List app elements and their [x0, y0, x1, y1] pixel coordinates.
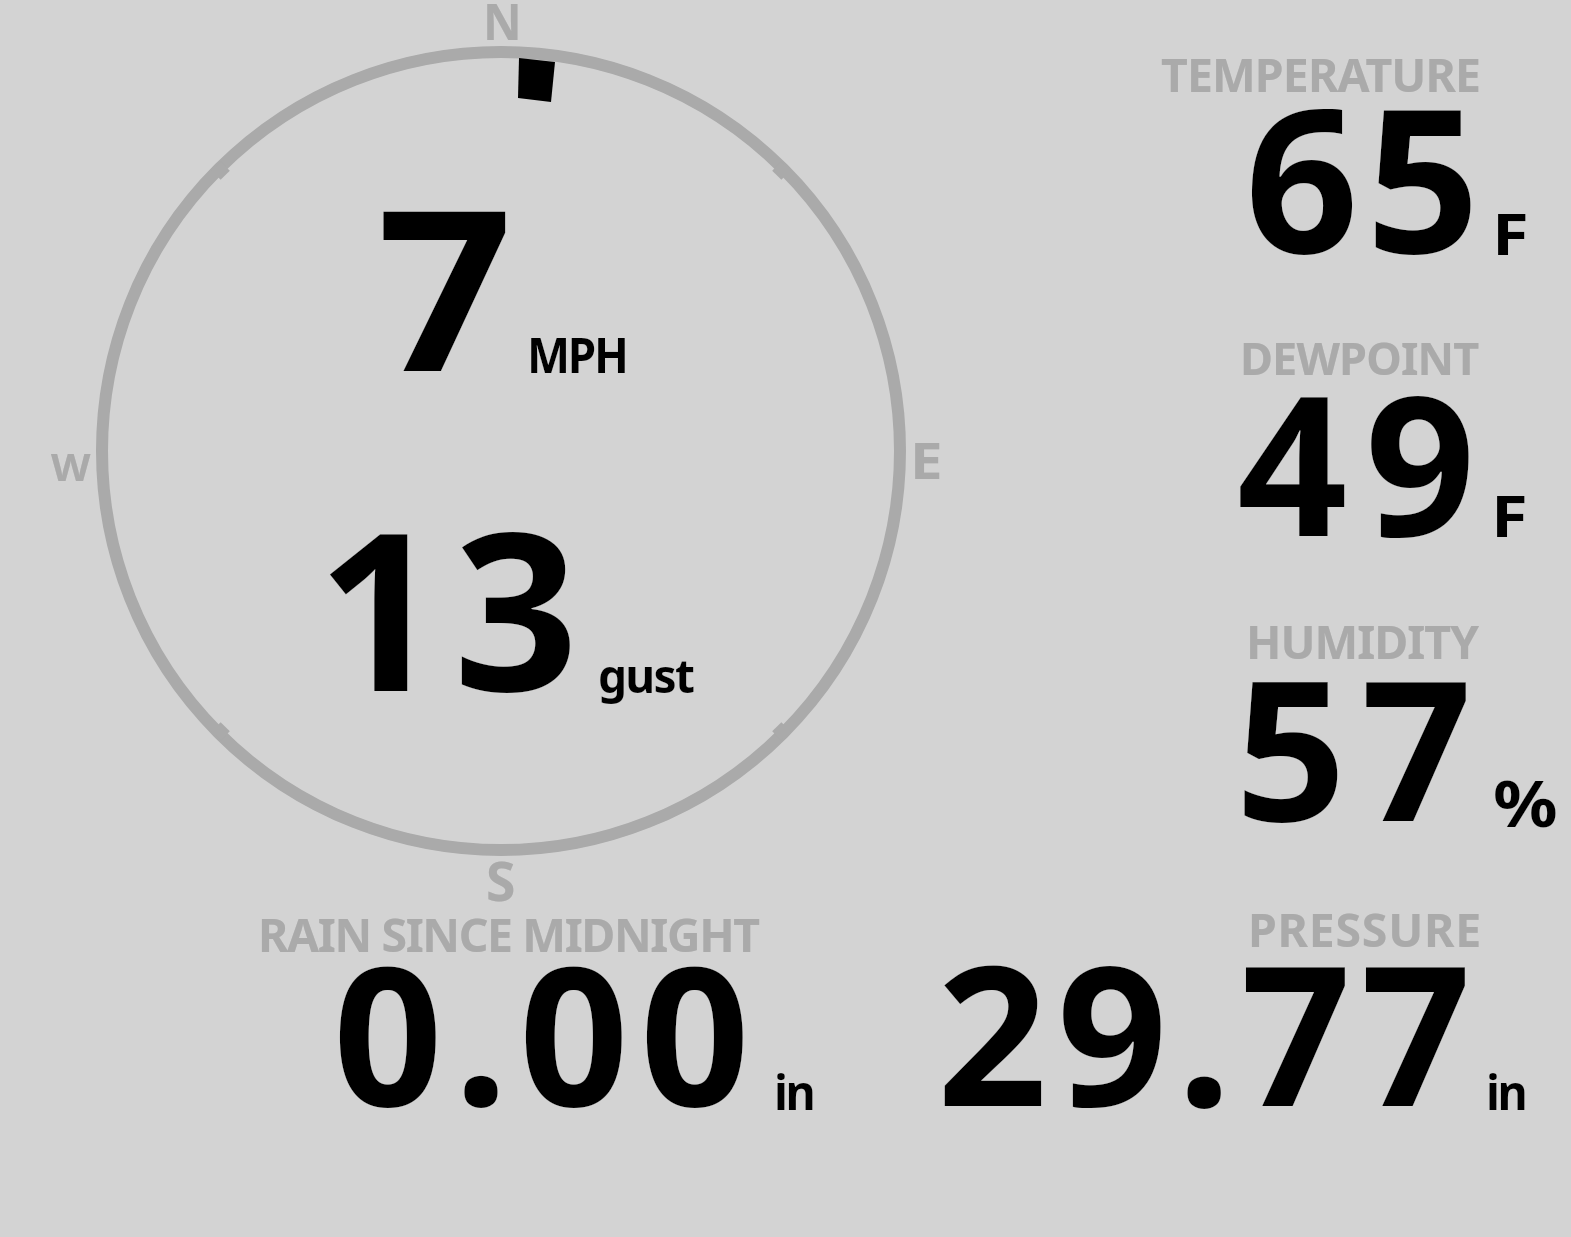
staticText: MPH [527, 322, 627, 387]
button[interactable]: Humidity 57 percent [1150, 610, 1560, 835]
staticText: F [1492, 193, 1529, 272]
button[interactable]: Wind direction compass, wind from the no… [96, 46, 906, 856]
staticText: TEMPERATURE [1161, 42, 1481, 105]
staticText: S [486, 844, 516, 917]
staticText: 49 [1237, 329, 1493, 554]
staticText: 13 [317, 457, 590, 727]
staticText: 57 [1235, 613, 1488, 838]
staticText: 29.77 [937, 899, 1481, 1129]
staticText: DEWPOINT [1240, 327, 1479, 388]
staticText: 7 [377, 133, 514, 403]
button[interactable]: Dewpoint 49 degrees Fahrenheit [1150, 325, 1560, 550]
button[interactable]: Barometric pressure 29.77 inches [930, 895, 1550, 1125]
button[interactable]: Rain since midnight 0.00 inches [250, 895, 820, 1125]
staticText: % [1493, 758, 1558, 846]
button[interactable]: Temperature 65 degrees Fahrenheit [1150, 40, 1560, 270]
staticText: W [51, 440, 91, 492]
staticText: F [1491, 475, 1528, 554]
staticText: gust [598, 644, 694, 707]
staticText: E [910, 425, 943, 494]
staticText: in [774, 1059, 814, 1124]
staticText: RAIN SINCE MIDNIGHT [258, 902, 759, 965]
staticText: HUMIDITY [1246, 609, 1479, 672]
staticText: 0.00 [333, 901, 762, 1131]
other: Wind direction indicator pointing north [518, 56, 556, 103]
staticText: in [1486, 1059, 1526, 1124]
button[interactable]: Wind gust 13 miles per hour [310, 450, 710, 720]
button[interactable]: Wind speed 7 miles per hour [330, 130, 650, 400]
staticText: PRESSURE [1248, 897, 1482, 960]
staticText: N [483, 0, 522, 55]
staticText: 65 [1245, 41, 1488, 271]
